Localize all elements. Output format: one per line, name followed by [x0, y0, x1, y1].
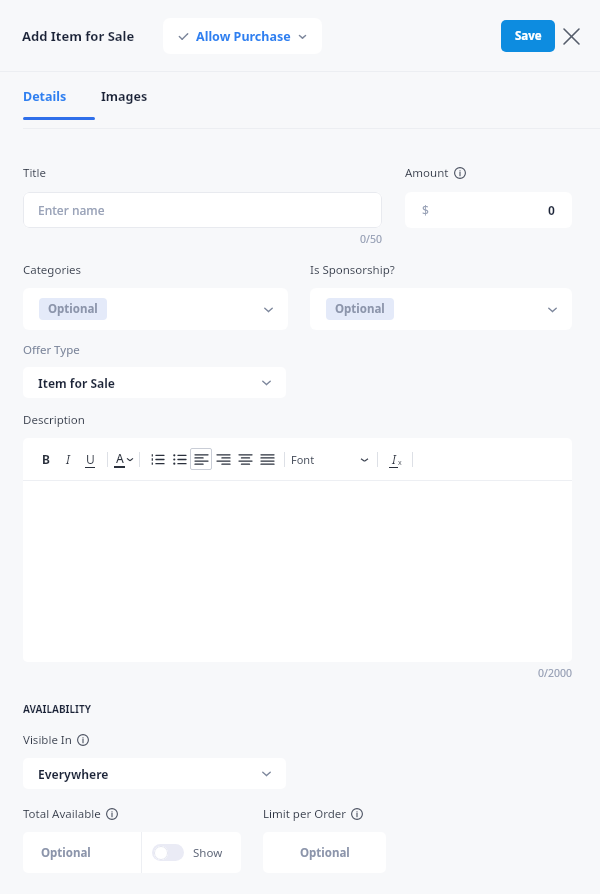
- button[interactable]: Text color: [114, 450, 133, 468]
- button[interactable]: Bulleted list: [168, 448, 190, 470]
- staticText: Optional: [48, 301, 98, 317]
- staticText: Enter name: [38, 202, 105, 218]
- staticText: I: [66, 451, 70, 467]
- staticText: Title: [23, 165, 46, 181]
- staticText: Show: [193, 845, 223, 861]
- button[interactable]: Allow Purchase: [163, 18, 322, 54]
- button[interactable]: Enter name: [23, 192, 382, 228]
- button[interactable]: Align 2: [234, 448, 256, 470]
- staticText: Details: [23, 88, 67, 105]
- staticText: Optional: [41, 845, 91, 861]
- staticText: 0: [548, 202, 555, 218]
- button[interactable]: Font: [291, 452, 357, 467]
- staticText: Is Sponsorship?: [310, 262, 395, 278]
- staticText: Offer Type: [23, 342, 80, 358]
- staticText: Optional: [300, 845, 350, 861]
- staticText: Total Available: [23, 806, 101, 822]
- button[interactable]: Font menu: [357, 452, 371, 466]
- staticText: A: [116, 450, 124, 466]
- button[interactable]: Align 3: [256, 448, 278, 470]
- staticText: x: [398, 458, 402, 468]
- staticText: Limit per Order: [263, 806, 346, 822]
- staticText: Save: [515, 28, 542, 44]
- button[interactable]: Save: [501, 20, 555, 52]
- staticText: Images: [101, 88, 148, 105]
- button[interactable]: Everywhere: [23, 758, 286, 789]
- staticText: 0/50: [23, 232, 382, 246]
- staticText: I: [392, 451, 396, 467]
- button[interactable]: I: [57, 448, 79, 470]
- button[interactable]: Numbered list: [146, 448, 168, 470]
- staticText: $: [422, 202, 429, 218]
- button[interactable]: Optional: [23, 832, 141, 873]
- button[interactable]: Show: [142, 832, 241, 873]
- staticText: Description: [23, 412, 85, 428]
- button[interactable]: Item for Sale: [23, 367, 286, 398]
- staticText: Font: [291, 452, 315, 467]
- staticText: Categories: [23, 262, 82, 278]
- button[interactable]: B: [35, 448, 57, 470]
- button[interactable]: Details: [23, 88, 67, 105]
- staticText: B: [42, 451, 50, 467]
- staticText: Add Item for Sale: [22, 27, 135, 45]
- button[interactable]: Align 0: [190, 448, 212, 470]
- staticText: Visible In: [23, 732, 72, 748]
- staticText: Amount: [405, 165, 449, 181]
- staticText: Optional: [335, 301, 385, 317]
- staticText: Item for Sale: [38, 375, 116, 391]
- button[interactable]: Optional: [263, 832, 386, 873]
- button[interactable]: Clear formatting: [384, 448, 406, 470]
- button[interactable]: Align 1: [212, 448, 234, 470]
- button[interactable]: Optional: [310, 288, 572, 330]
- staticText: AVAILABILITY: [23, 702, 91, 716]
- button[interactable]: Optional: [23, 288, 288, 330]
- button[interactable]: U: [79, 448, 101, 470]
- staticText: U: [86, 451, 95, 467]
- button[interactable]: Close: [556, 21, 586, 51]
- button[interactable]: $: [405, 192, 572, 228]
- button[interactable]: Images: [101, 88, 148, 105]
- staticText: 0/2000: [23, 666, 572, 680]
- staticText: Everywhere: [38, 766, 109, 782]
- staticText: Allow Purchase: [196, 28, 291, 45]
